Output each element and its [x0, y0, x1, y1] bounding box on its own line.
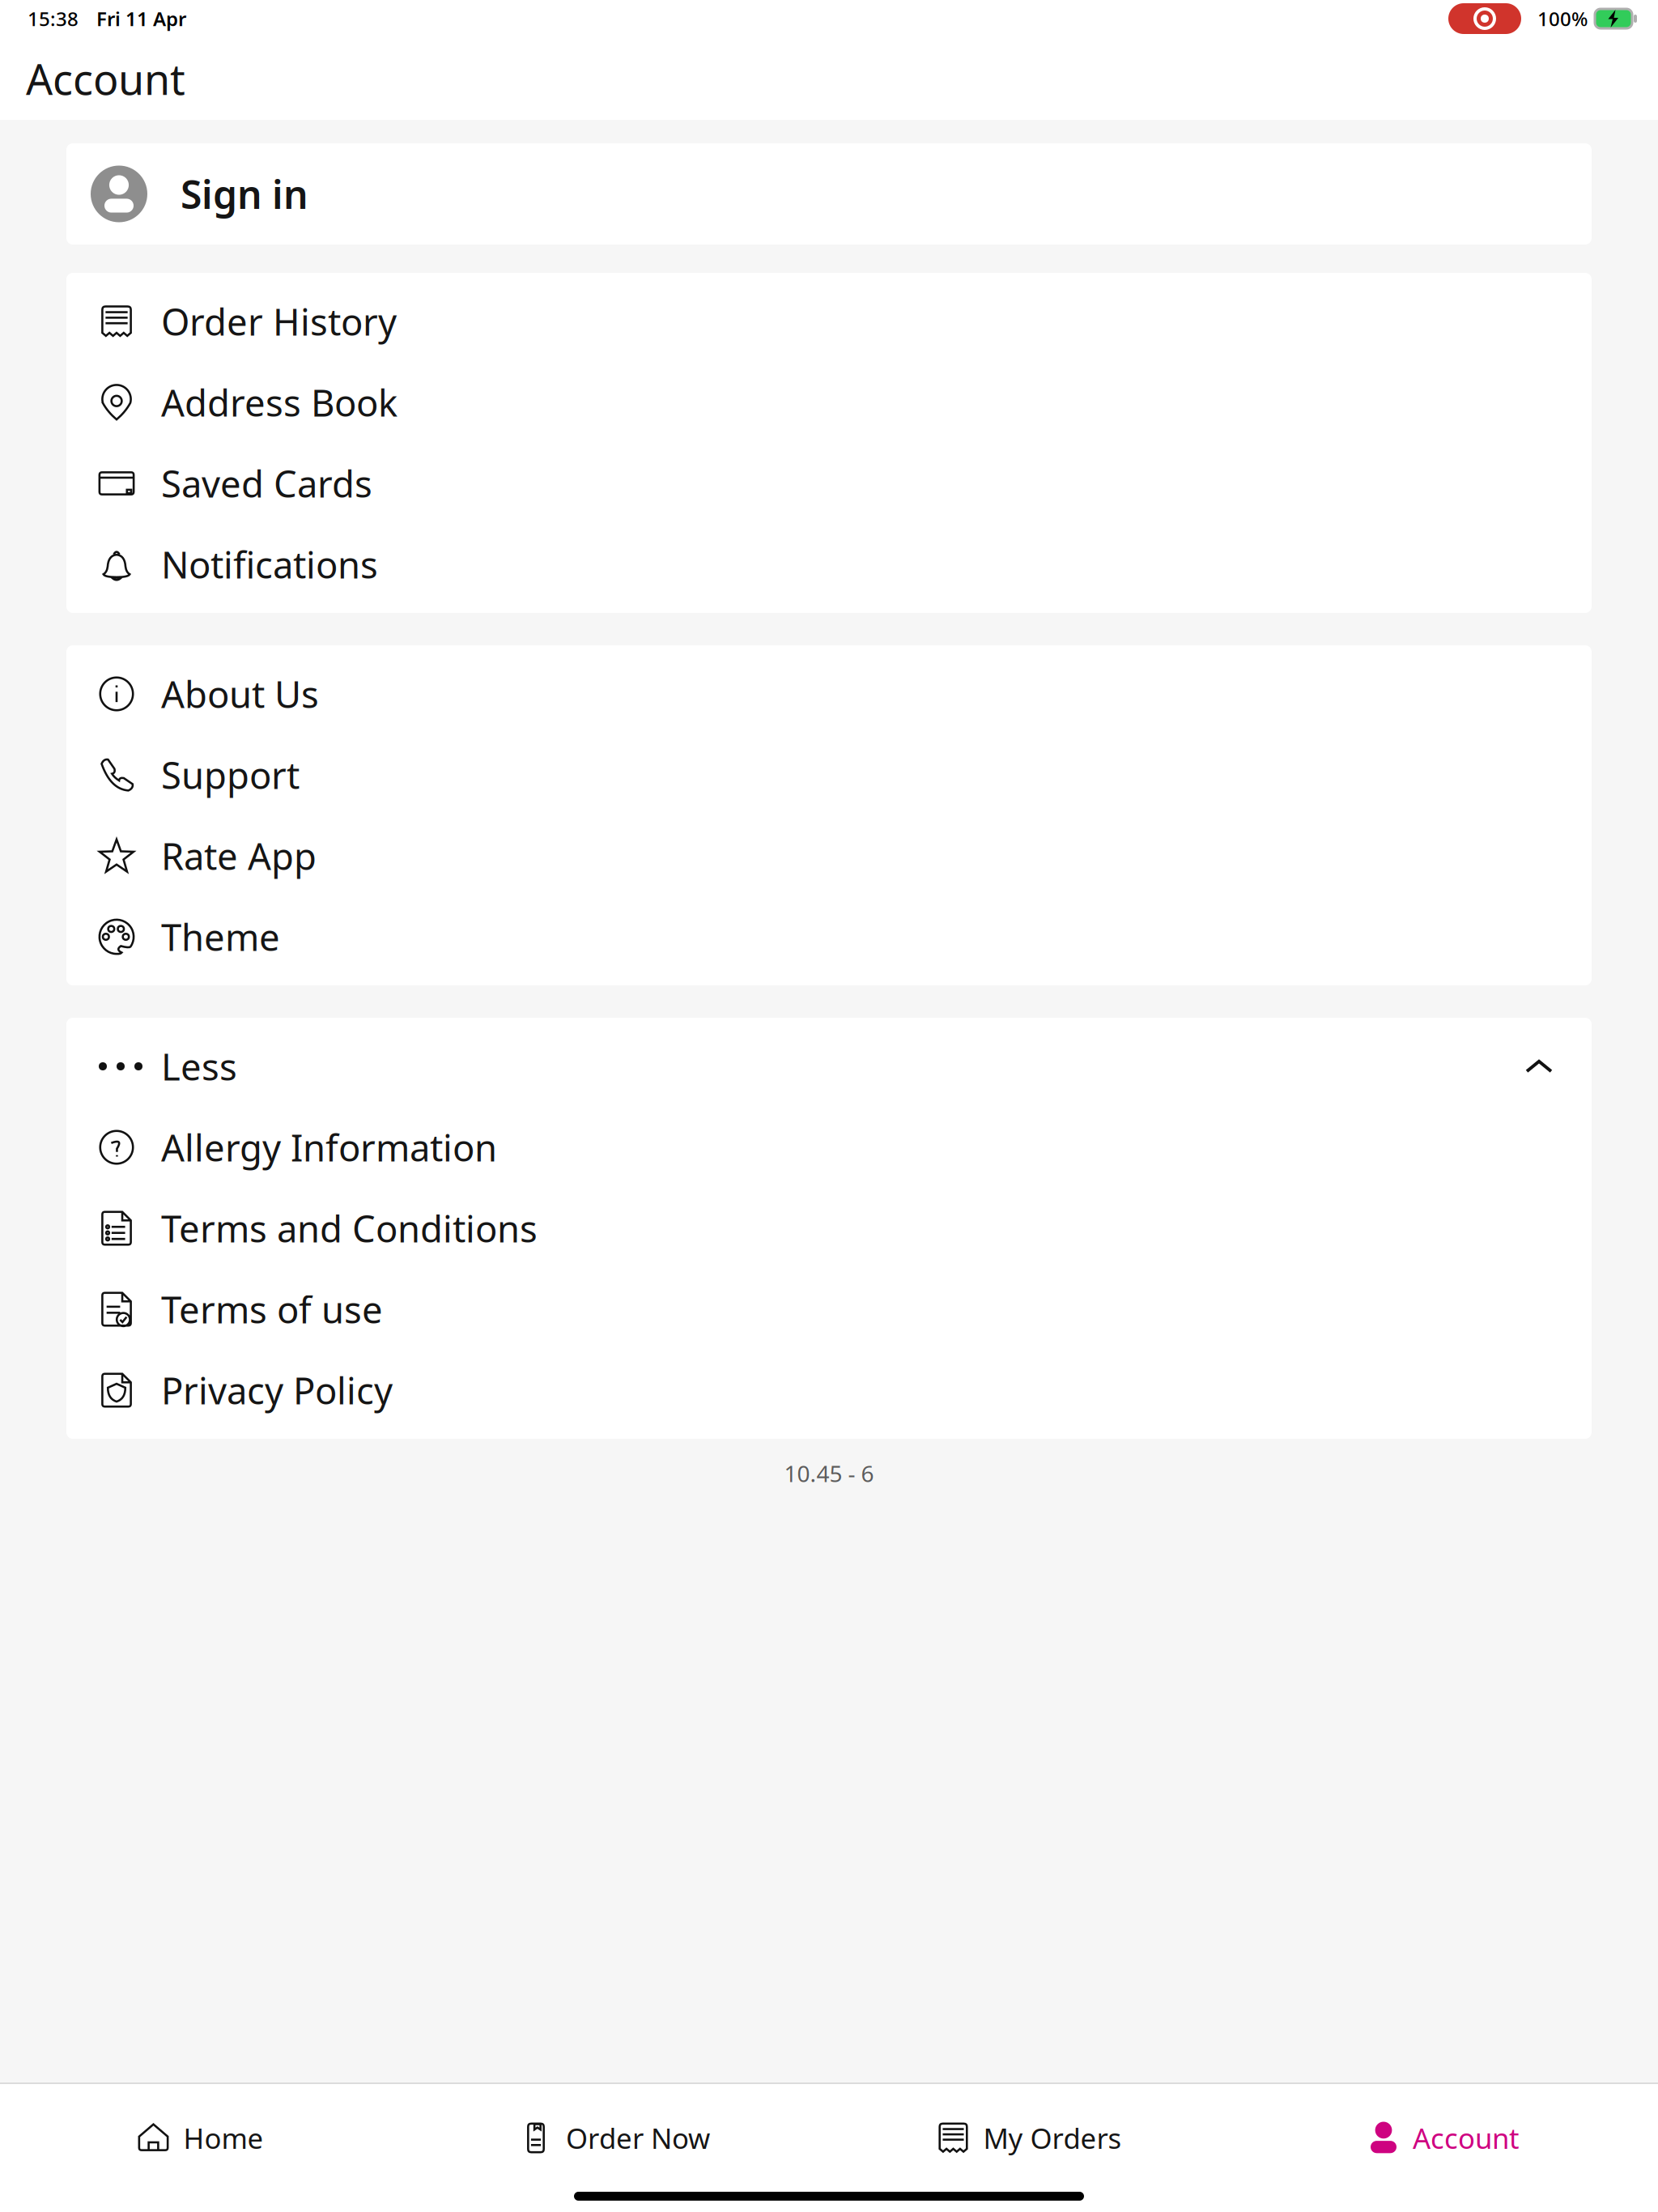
staticText: Privacy Policy [161, 1366, 393, 1415]
button[interactable]: Support [66, 734, 1592, 815]
staticText: Theme [161, 912, 280, 961]
staticText: Account [1413, 2119, 1520, 2157]
staticText: Less [161, 1042, 237, 1091]
button[interactable]: Terms of use [66, 1269, 1592, 1350]
staticText: Allergy Information [161, 1123, 497, 1172]
staticText: Order Now [566, 2119, 710, 2157]
staticText: 15:38 [28, 6, 79, 32]
staticText: Address Book [161, 378, 397, 427]
button[interactable]: Account [1236, 2101, 1651, 2174]
button[interactable]: Address Book [66, 362, 1592, 443]
button[interactable]: Home [0, 2101, 407, 2174]
button[interactable]: Privacy Policy [66, 1350, 1592, 1431]
staticText: Home [183, 2119, 264, 2157]
button[interactable]: Notifications [66, 524, 1592, 605]
staticText: Terms and Conditions [161, 1204, 538, 1253]
staticText: Support [161, 750, 300, 799]
staticText: Notifications [161, 540, 378, 589]
button[interactable]: Terms and Conditions [66, 1188, 1592, 1269]
staticText: Rate App [161, 831, 317, 880]
button[interactable]: Less [66, 1026, 1592, 1107]
button[interactable]: Order History [66, 281, 1592, 362]
staticText: Order History [161, 297, 397, 346]
button[interactable]: Saved Cards [66, 443, 1592, 524]
button[interactable]: About Us [66, 653, 1592, 734]
button[interactable]: Allergy Information [66, 1107, 1592, 1188]
staticText: 100% [1537, 6, 1588, 32]
staticText: Fri 11 Apr [96, 6, 186, 32]
button[interactable]: Rate App [66, 815, 1592, 896]
staticText: Saved Cards [161, 459, 372, 508]
button[interactable]: Sign in [66, 143, 1592, 245]
button[interactable]: Theme [66, 896, 1592, 977]
staticText: My Orders [983, 2119, 1122, 2157]
staticText: Account [26, 51, 185, 107]
staticText: Sign in [181, 168, 308, 220]
button[interactable]: My Orders [822, 2101, 1236, 2174]
staticText: About Us [161, 670, 319, 718]
staticText: 10.45 - 6 [784, 1458, 874, 1488]
button[interactable]: Order Now [407, 2101, 822, 2174]
staticText: Terms of use [161, 1285, 383, 1334]
